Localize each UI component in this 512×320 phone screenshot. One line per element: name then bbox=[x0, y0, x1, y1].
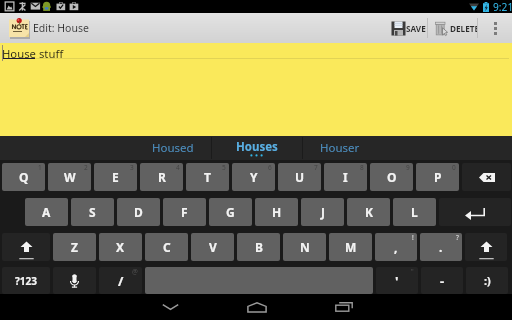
button[interactable]: DELETE bbox=[428, 13, 477, 43]
button[interactable]: U bbox=[278, 163, 321, 191]
staticText: . bbox=[439, 239, 443, 255]
button[interactable]: / bbox=[99, 267, 142, 294]
button[interactable]: H bbox=[255, 198, 298, 226]
staticText: ?123 bbox=[15, 274, 37, 288]
staticText: A bbox=[42, 204, 51, 220]
staticText: K bbox=[365, 204, 373, 220]
button[interactable]: F bbox=[163, 198, 206, 226]
button[interactable]: J bbox=[301, 198, 344, 226]
staticText: J bbox=[321, 204, 325, 220]
staticText: B bbox=[255, 239, 263, 255]
staticText: U bbox=[295, 169, 305, 185]
button[interactable]: T bbox=[186, 163, 229, 191]
button[interactable]: Edit: House bbox=[0, 13, 89, 43]
button[interactable]: :) bbox=[466, 267, 508, 294]
staticText: F bbox=[181, 204, 188, 220]
staticText: O bbox=[387, 169, 397, 185]
staticText: 8 bbox=[360, 163, 364, 172]
staticText: / bbox=[118, 272, 124, 290]
staticText: C bbox=[163, 239, 171, 255]
button[interactable]: R bbox=[140, 163, 183, 191]
staticText: - bbox=[440, 272, 445, 290]
button[interactable]: K bbox=[347, 198, 390, 226]
staticText: P bbox=[434, 169, 442, 185]
button[interactable]: Z bbox=[53, 233, 96, 261]
button[interactable]: X bbox=[99, 233, 142, 261]
staticText: Z bbox=[71, 239, 78, 255]
button[interactable]: W bbox=[48, 163, 91, 191]
staticText: E bbox=[112, 169, 119, 185]
staticText: L bbox=[411, 204, 418, 220]
button[interactable]: Houses bbox=[210, 136, 303, 160]
button[interactable]: Shift bbox=[465, 233, 507, 261]
button[interactable]: N bbox=[283, 233, 326, 261]
button[interactable]: Recent apps bbox=[300, 294, 387, 320]
button[interactable]: Y bbox=[232, 163, 275, 191]
button[interactable]: V bbox=[191, 233, 234, 261]
staticText: ? bbox=[456, 233, 459, 242]
staticText: W bbox=[64, 169, 76, 185]
button[interactable]: I bbox=[324, 163, 367, 191]
staticText: N bbox=[300, 239, 310, 255]
staticText: Y bbox=[250, 169, 258, 185]
staticText: Edit: House bbox=[33, 21, 89, 35]
staticText: I bbox=[343, 169, 348, 185]
button[interactable]: More options bbox=[478, 13, 512, 43]
button[interactable]: SAVE bbox=[385, 13, 427, 43]
button[interactable]: E bbox=[94, 163, 137, 191]
button[interactable]: M bbox=[329, 233, 372, 261]
staticText: Houses bbox=[236, 139, 278, 155]
button[interactable]: ' bbox=[376, 267, 418, 294]
button[interactable]: - bbox=[421, 267, 463, 294]
button[interactable]: A bbox=[25, 198, 68, 226]
button[interactable]: D bbox=[117, 198, 160, 226]
button[interactable]: ?123 bbox=[2, 267, 50, 294]
staticText: Housed bbox=[152, 140, 194, 156]
staticText: D bbox=[134, 204, 143, 220]
staticText: 3 bbox=[130, 163, 134, 172]
button[interactable]: Housed bbox=[127, 136, 219, 160]
staticText: R bbox=[158, 169, 166, 185]
button[interactable]: Home bbox=[213, 294, 300, 320]
staticText: , bbox=[394, 239, 398, 255]
button[interactable]: G bbox=[209, 198, 252, 226]
button[interactable]: Hide keyboard bbox=[127, 294, 213, 320]
button[interactable]: S bbox=[71, 198, 114, 226]
staticText: :) bbox=[484, 273, 491, 288]
staticText: Q bbox=[19, 169, 29, 185]
button[interactable]: B bbox=[237, 233, 280, 261]
staticText: 9 bbox=[406, 163, 410, 172]
staticText: SAVE bbox=[406, 23, 426, 34]
staticText: G bbox=[226, 204, 235, 220]
staticText: " bbox=[411, 267, 414, 276]
button[interactable]: C bbox=[145, 233, 188, 261]
staticText: ' bbox=[395, 272, 399, 290]
staticText: 6 bbox=[268, 163, 272, 172]
staticText: stuff bbox=[36, 46, 64, 61]
button[interactable]: . bbox=[420, 233, 462, 261]
button[interactable]: L bbox=[393, 198, 436, 226]
staticText: @ bbox=[132, 267, 138, 276]
button[interactable]: Enter bbox=[439, 198, 511, 226]
staticText: 9:21 bbox=[493, 0, 512, 13]
button[interactable]: Houser bbox=[307, 136, 373, 160]
button[interactable]: Backspace bbox=[462, 163, 511, 191]
staticText: Houser bbox=[320, 140, 360, 156]
staticText: 4 bbox=[176, 163, 180, 172]
staticText: T bbox=[204, 169, 211, 185]
button[interactable]: P bbox=[416, 163, 459, 191]
staticText: H bbox=[272, 204, 282, 220]
button[interactable]: Shift bbox=[2, 233, 50, 261]
button[interactable]: , bbox=[375, 233, 417, 261]
button[interactable]: Q bbox=[2, 163, 45, 191]
staticText: 2 bbox=[84, 163, 88, 172]
staticText: 5 bbox=[222, 163, 226, 172]
staticText: X bbox=[116, 239, 125, 255]
button[interactable]: O bbox=[370, 163, 413, 191]
button[interactable]: Voice input bbox=[53, 267, 96, 294]
staticText: V bbox=[209, 239, 217, 255]
staticText: House bbox=[2, 46, 36, 61]
staticText: S bbox=[89, 204, 96, 220]
staticText: M bbox=[345, 239, 357, 255]
